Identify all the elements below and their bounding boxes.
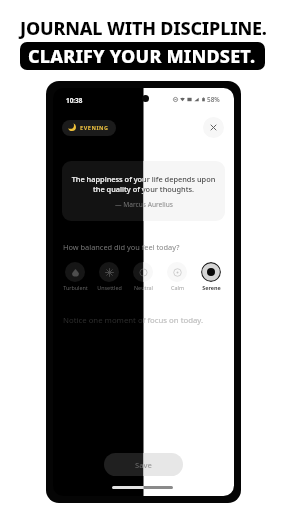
button[interactable]: Close: [203, 117, 224, 138]
staticText: How balanced did you feel today?: [63, 242, 180, 252]
button[interactable]: EVENING: [62, 120, 116, 136]
staticText: Turbulent: [63, 284, 88, 291]
button[interactable]: Calm: [160, 262, 194, 291]
staticText: 10:38: [66, 96, 83, 105]
staticText: Calm: [171, 284, 184, 291]
button[interactable]: Serene: [194, 262, 228, 291]
button[interactable]: Neutral: [126, 262, 160, 291]
button[interactable]: Calm: [160, 262, 194, 291]
staticText: Neutral: [134, 284, 153, 291]
button[interactable]: Neutral: [126, 262, 160, 291]
staticText: 10:38: [66, 96, 83, 105]
staticText: 58%: [207, 95, 220, 104]
staticText: Serene: [202, 284, 221, 291]
button[interactable]: Close: [203, 117, 224, 138]
staticText: Save: [135, 460, 152, 470]
button[interactable]: Turbulent: [58, 262, 92, 291]
button[interactable]: Save: [104, 453, 183, 476]
staticText: Notice one moment of focus on today.: [63, 315, 204, 326]
button[interactable]: Save: [104, 453, 183, 476]
staticText: Turbulent: [63, 284, 88, 291]
staticText: Calm: [171, 284, 184, 291]
staticText: How balanced did you feel today?: [63, 242, 180, 252]
staticText: Notice one moment of focus on today.: [63, 315, 204, 326]
staticText: — Marcus Aurelius: [115, 200, 173, 209]
staticText: 58%: [207, 95, 220, 104]
staticText: CLARIFY YOUR MINDSET.: [28, 44, 256, 69]
staticText: Serene: [202, 284, 221, 291]
button[interactable]: Unsettled: [92, 262, 126, 291]
button[interactable]: Serene: [194, 262, 228, 291]
staticText: The happiness of your life depends upon …: [68, 174, 219, 194]
staticText: Neutral: [134, 284, 153, 291]
staticText: The happiness of your life depends upon …: [68, 174, 219, 194]
staticText: Unsettled: [97, 284, 122, 291]
staticText: Unsettled: [97, 284, 122, 291]
staticText: Save: [135, 460, 152, 470]
button[interactable]: Unsettled: [92, 262, 126, 291]
button[interactable]: EVENING: [62, 120, 116, 136]
staticText: EVENING: [80, 124, 109, 131]
staticText: — Marcus Aurelius: [115, 200, 173, 209]
staticText: EVENING: [80, 124, 109, 131]
staticText: JOURNAL WITH DISCIPLINE.: [20, 16, 267, 41]
button[interactable]: Turbulent: [58, 262, 92, 291]
